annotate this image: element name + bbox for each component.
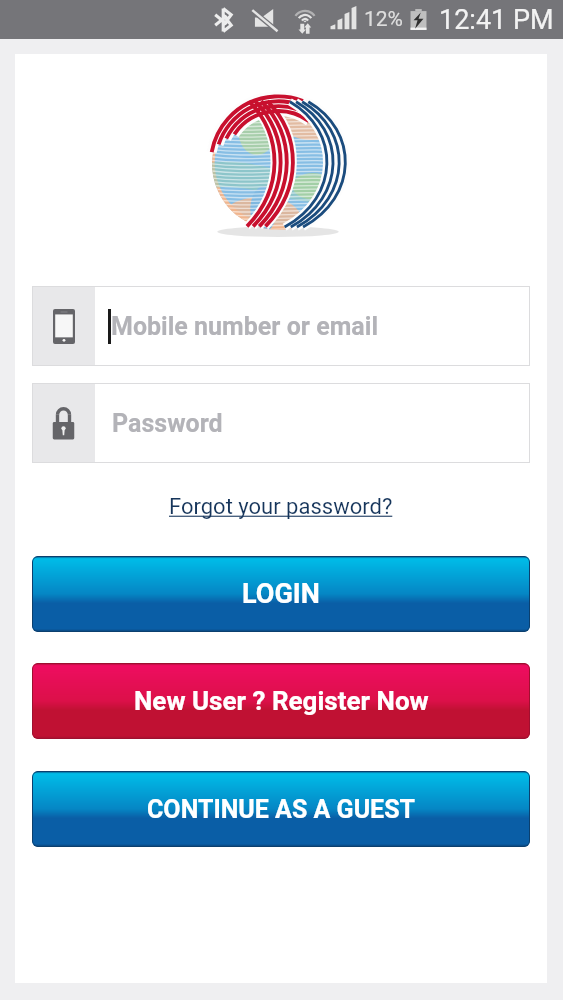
staticText: 12% [364, 7, 403, 32]
button[interactable]: New User ? Register Now [32, 663, 530, 739]
button[interactable]: Password [32, 383, 530, 463]
staticText: New User ? Register Now [134, 686, 429, 716]
staticText: Mobile number or email [111, 312, 379, 341]
button[interactable]: LOGIN [32, 556, 530, 632]
other: Silent mode [250, 7, 279, 33]
other: Battery charging [409, 5, 428, 34]
other: Wi-Fi [292, 4, 318, 35]
staticText: LOGIN [242, 578, 320, 610]
staticText: CONTINUE AS A GUEST [147, 795, 415, 824]
other: Signal strength [330, 6, 356, 33]
button[interactable]: Forgot your password? [165, 492, 397, 522]
button[interactable]: CONTINUE AS A GUEST [32, 771, 530, 847]
staticText: 12:41 PM [439, 4, 554, 36]
button[interactable]: Mobile number or email [32, 286, 530, 366]
other: Bluetooth [214, 7, 234, 33]
staticText: Password [112, 409, 223, 438]
